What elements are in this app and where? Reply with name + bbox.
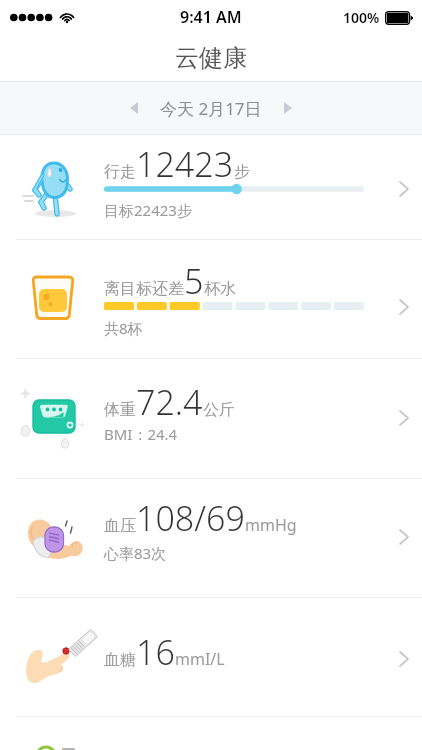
staticText: 血糖 xyxy=(104,650,136,670)
staticText: 108/69 xyxy=(136,495,245,541)
staticText: 16 xyxy=(136,629,175,675)
staticText: 公斤 xyxy=(203,400,235,420)
other: Open 行走 details xyxy=(386,135,422,239)
staticText: 目标22423步 xyxy=(104,200,192,220)
staticText: 心率83次 xyxy=(104,543,167,563)
staticText: 体重 xyxy=(104,400,136,420)
button[interactable]: 体重 xyxy=(0,359,422,478)
button[interactable]: 血压 xyxy=(0,479,422,597)
staticText: mmHg xyxy=(245,514,297,536)
staticText: 72.4 xyxy=(136,379,203,425)
staticText: 杯水 xyxy=(204,279,236,299)
staticText: 血压 xyxy=(104,516,136,536)
staticText: BMI：24.4 xyxy=(104,424,178,444)
staticText: 步 xyxy=(234,162,250,182)
button[interactable]: 行走 xyxy=(0,135,422,239)
staticText: 100% xyxy=(343,8,380,27)
other: Open 血糖 details xyxy=(386,598,422,716)
staticText: 行走 xyxy=(104,162,136,182)
staticText: 5 xyxy=(184,258,204,304)
staticText: 今天 2月17日 xyxy=(160,97,262,120)
button[interactable]: Previous day xyxy=(120,94,148,122)
staticText: 9:41 AM xyxy=(180,6,242,28)
staticText: 12423 xyxy=(136,141,234,187)
other: Open 离目标还差 details xyxy=(386,240,422,358)
staticText: 云健康 xyxy=(175,43,247,73)
button[interactable]: 离目标还差 xyxy=(0,240,422,358)
button[interactable]: 血糖 xyxy=(0,598,422,716)
button[interactable]: Next day xyxy=(274,94,302,122)
staticText: 共8杯 xyxy=(104,318,143,338)
staticText: 离目标还差 xyxy=(104,279,184,299)
staticText: mmI/L xyxy=(175,648,225,670)
other: Open 血压 details xyxy=(386,479,422,597)
other: Open 体重 details xyxy=(386,359,422,478)
